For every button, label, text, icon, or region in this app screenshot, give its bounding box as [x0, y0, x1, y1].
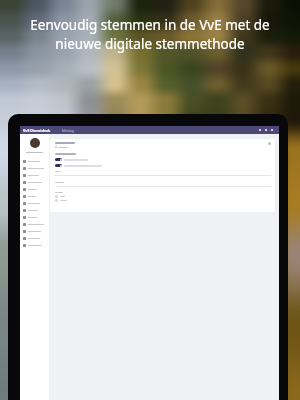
button[interactable] — [20, 235, 49, 242]
button[interactable] — [20, 158, 49, 165]
button[interactable] — [20, 200, 49, 207]
button[interactable] — [20, 221, 49, 228]
button[interactable]: More options — [268, 142, 271, 145]
button[interactable] — [55, 158, 271, 161]
button[interactable] — [20, 172, 49, 179]
button[interactable] — [20, 179, 49, 186]
staticText: Eenvoudig stemmen in de VvE met de nieuw… — [30, 16, 270, 52]
button[interactable] — [20, 207, 49, 214]
button[interactable] — [55, 199, 67, 202]
button[interactable] — [20, 186, 49, 193]
staticText: Mening — [62, 128, 74, 132]
button[interactable] — [20, 165, 49, 172]
button[interactable] — [20, 214, 49, 221]
button[interactable] — [20, 242, 49, 249]
button[interactable] — [55, 164, 271, 167]
staticText: VvE Dienstdesk — [23, 128, 51, 133]
button[interactable] — [55, 195, 65, 198]
button[interactable] — [20, 228, 49, 235]
button[interactable] — [20, 193, 49, 200]
